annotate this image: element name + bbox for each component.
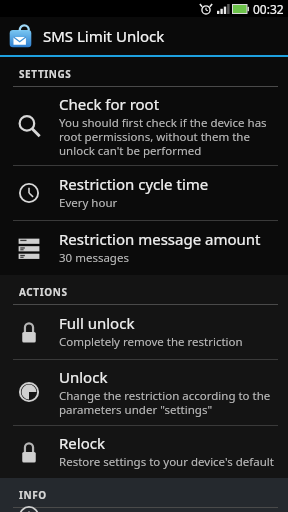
staticText: SMS Limit Unlock — [43, 26, 165, 46]
other: Check for root — [16, 113, 42, 139]
staticText: 30 messages — [59, 250, 129, 266]
other: Unlock — [16, 379, 42, 405]
other: Full unlock — [16, 319, 42, 345]
button[interactable]: About — [0, 508, 288, 512]
button[interactable]: Full unlock — [0, 305, 288, 359]
other: Restriction cycle time — [16, 180, 42, 206]
staticText: ACTIONS — [19, 285, 68, 299]
staticText: Restriction cycle time — [59, 174, 209, 194]
staticText: Check for root — [59, 94, 160, 114]
staticText: Every hour — [59, 195, 118, 211]
staticText: Unlock — [59, 367, 108, 387]
button[interactable]: Relock — [0, 426, 288, 478]
staticText: Full unlock — [59, 313, 135, 333]
button[interactable]: Restriction message amount — [0, 221, 288, 275]
button[interactable]: Check for root — [0, 87, 288, 165]
button[interactable]: Unlock — [0, 360, 288, 425]
staticText: Relock — [59, 433, 105, 453]
staticText: 00:32 — [253, 1, 284, 17]
staticText: SETTINGS — [19, 67, 72, 81]
other: Restriction message amount — [16, 235, 42, 261]
staticText: Completely remove the restriction — [59, 334, 243, 350]
staticText: Change the restriction according to the … — [59, 388, 276, 417]
staticText: INFO — [19, 488, 47, 502]
staticText: You should first check if the device has… — [59, 115, 276, 158]
staticText: Restriction message amount — [59, 229, 261, 249]
staticText: Restore settings to your device's defaul… — [59, 454, 274, 470]
other: Relock — [16, 439, 42, 465]
button[interactable]: Restriction cycle time — [0, 166, 288, 220]
